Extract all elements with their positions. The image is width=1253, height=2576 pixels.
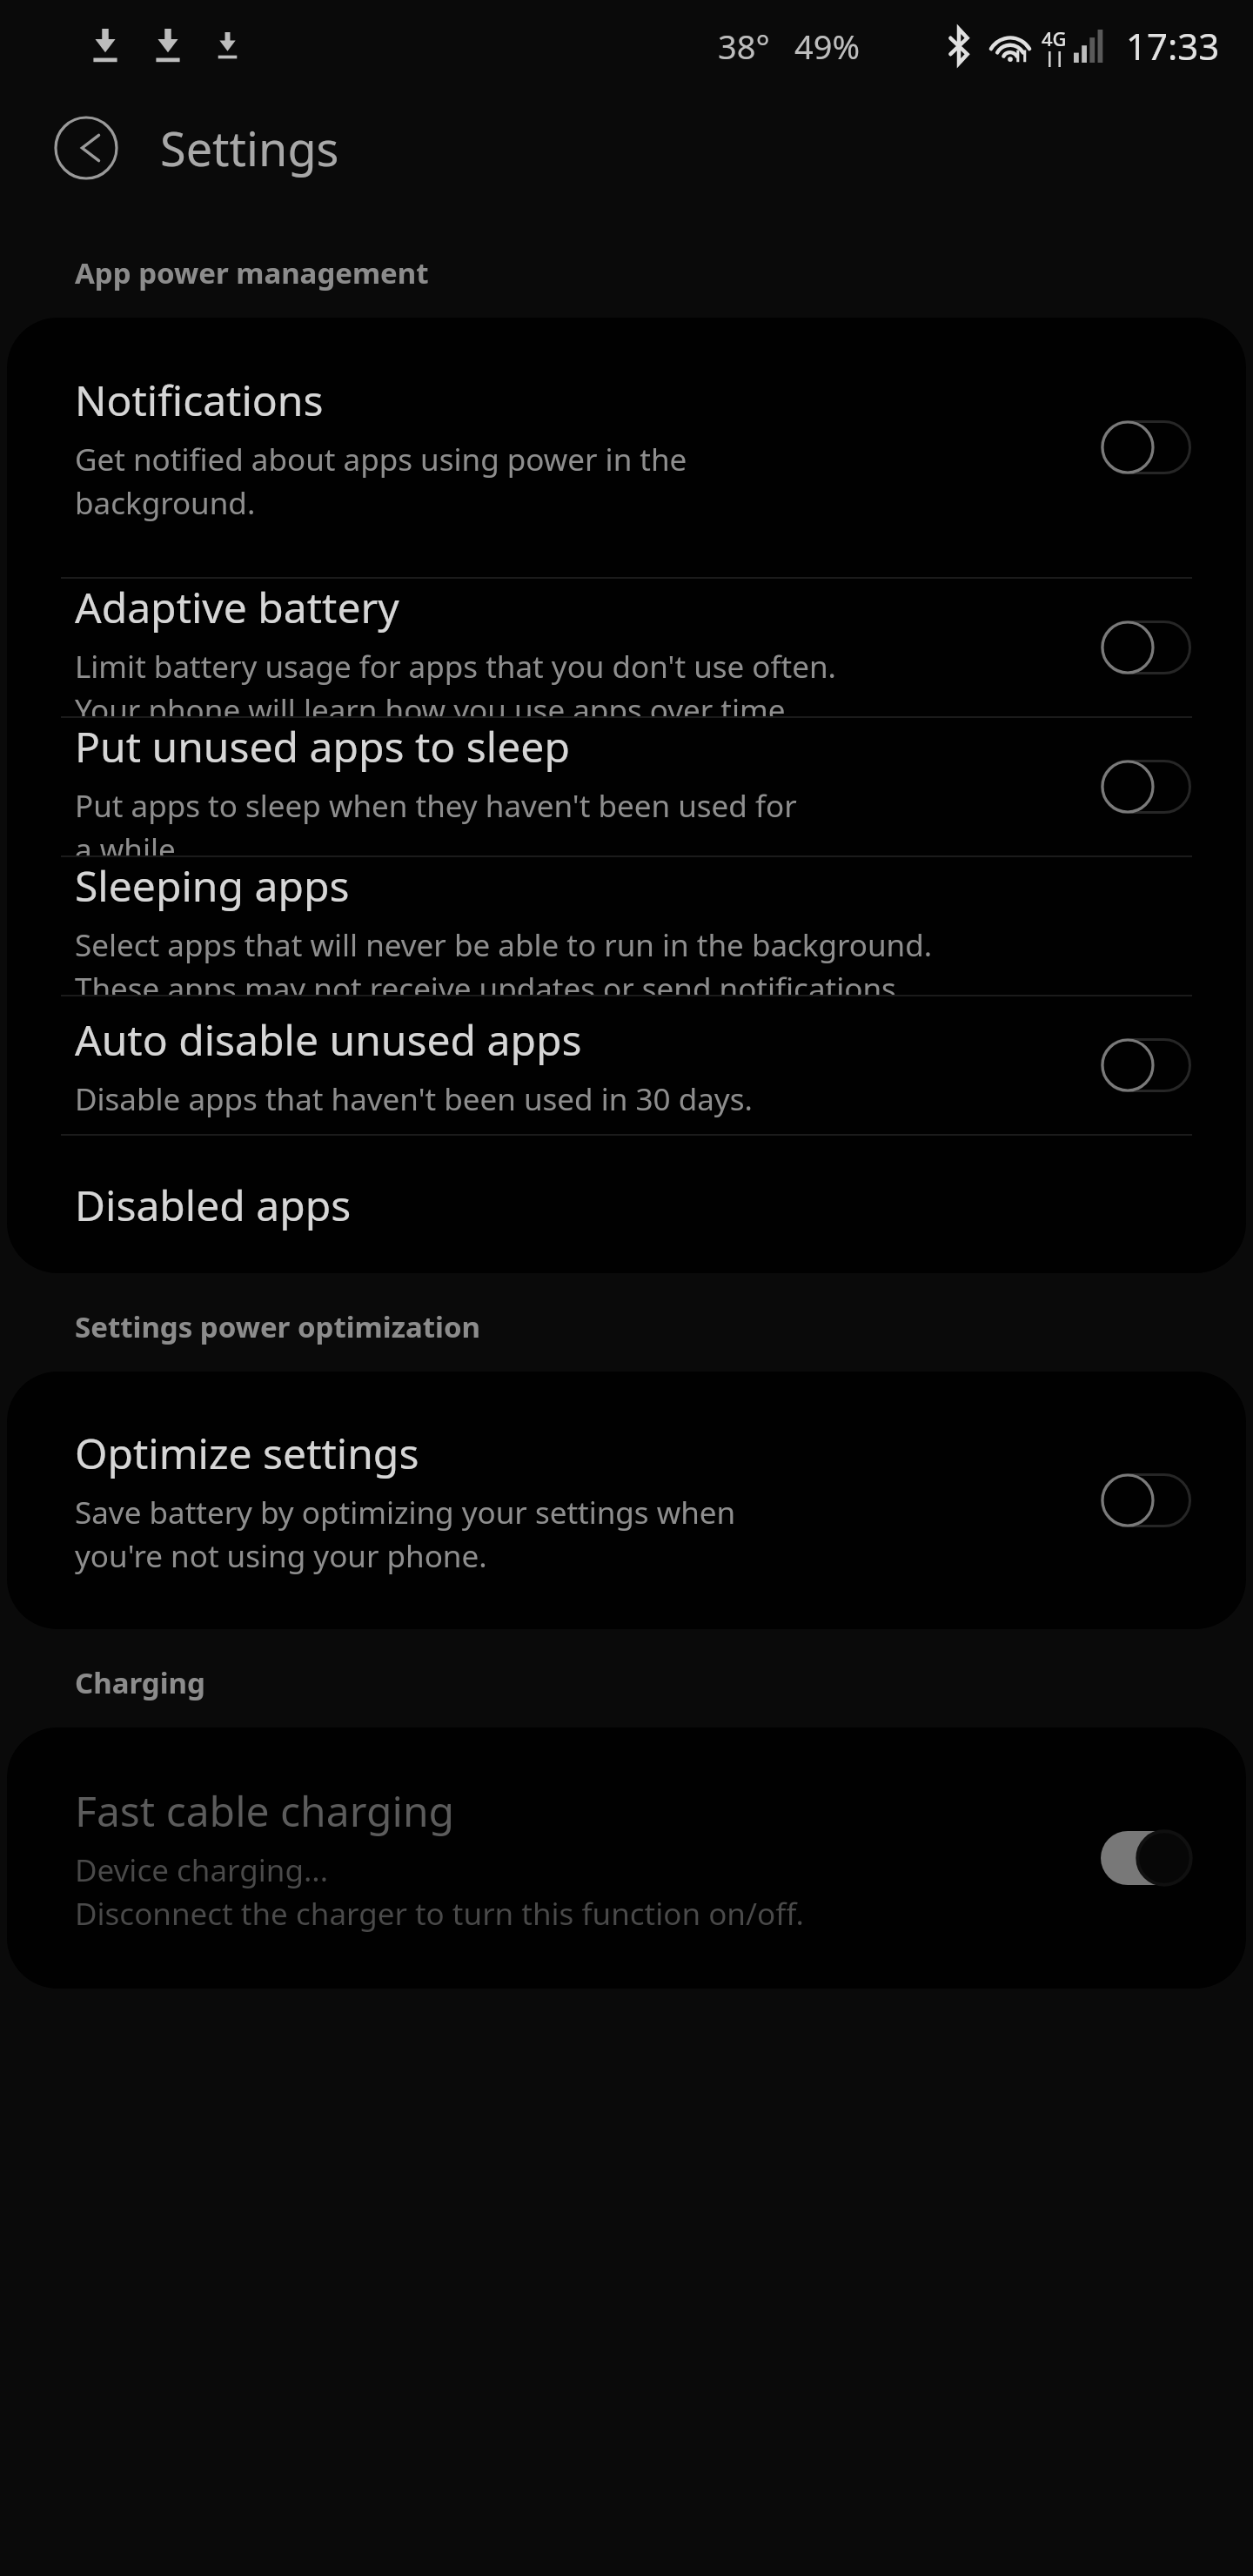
staticText: Device charging... Disconnect the charge… [75,1849,804,1934]
staticText: App power management [75,253,429,292]
button[interactable]: Auto disable unused apps [7,996,1246,1134]
staticText: 4G [1042,25,1067,51]
staticText: Fast cable charging [75,1782,455,1839]
staticText: Settings power optimization [75,1307,480,1346]
button[interactable]: Put unused apps to sleep [7,718,1246,855]
staticText: Get notified about apps using power in t… [75,439,687,523]
staticText: Put apps to sleep when they haven't been… [75,785,797,855]
staticText: 38° [718,23,770,69]
staticText: Adaptive battery [75,579,399,635]
button[interactable]: Toggle off [1101,420,1191,474]
staticText: Limit battery usage for apps that you do… [75,646,836,716]
button[interactable]: Disabled apps [7,1136,1246,1273]
button[interactable]: Sleeping apps [7,857,1246,995]
button[interactable]: Toggle off [1101,621,1191,674]
staticText: Disabled apps [75,1177,352,1233]
staticText: 49% [794,23,861,69]
button[interactable]: Toggle off [1101,1473,1191,1527]
button[interactable]: Toggle off [1101,760,1191,814]
staticText: 17:33 [1126,21,1220,70]
staticText: Save battery by optimizing your settings… [75,1492,736,1576]
staticText: Notifications [75,372,324,428]
button[interactable]: Back [52,114,120,182]
button[interactable]: Toggle on [1101,1831,1191,1885]
button[interactable]: Optimize settings [7,1372,1246,1629]
button[interactable]: Toggle off [1101,1038,1191,1092]
staticText: Auto disable unused apps [75,1011,582,1068]
staticText: Disable apps that haven't been used in 3… [75,1078,753,1120]
button[interactable]: Fast cable charging [7,1727,1246,1989]
button[interactable]: Notifications [7,318,1246,577]
staticText: Charging [75,1663,205,1702]
button[interactable]: Adaptive battery [7,579,1246,716]
staticText: Settings [160,116,339,180]
staticText: Put unused apps to sleep [75,718,570,775]
staticText: Optimize settings [75,1425,419,1481]
staticText: Select apps that will never be able to r… [75,924,933,995]
staticText: Sleeping apps [75,857,350,914]
